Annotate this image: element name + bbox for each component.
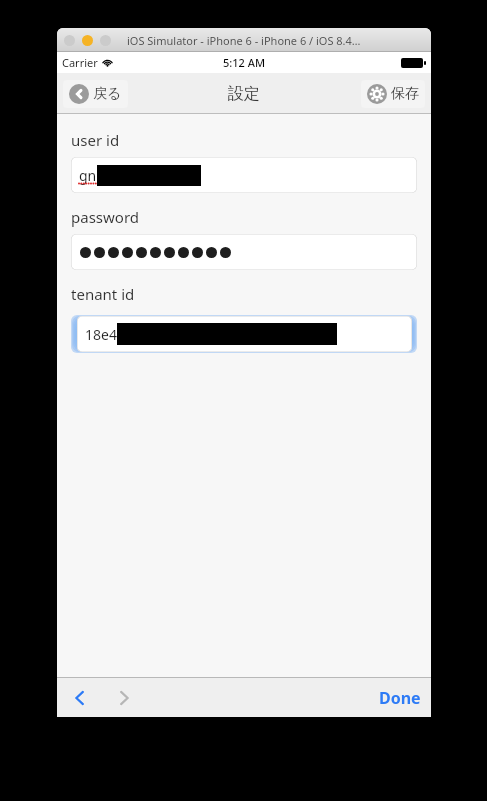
button[interactable]: 保存 [361,80,425,108]
staticText: tenant id [71,284,135,304]
button[interactable]: gn [71,157,417,193]
staticText: 5:12 AM [223,55,266,70]
staticText: 保存 [391,85,419,103]
staticText: 戻る [93,85,122,103]
button[interactable]: Next field [107,681,141,715]
staticText: user id [71,130,120,150]
button[interactable]: 18e4 [77,316,412,352]
staticText: password [71,207,139,227]
staticText: 設定 [228,84,260,104]
staticText: gn [79,166,97,185]
staticText: Carrier [62,55,98,70]
staticText: iOS Simulator - iPhone 6 - iPhone 6 / iO… [127,33,361,48]
button[interactable]: 戻る [63,80,128,108]
button[interactable] [71,234,417,270]
button[interactable]: Previous field [63,681,97,715]
staticText: Done [379,687,421,709]
staticText: 18e4 [85,325,117,344]
button[interactable]: Done [369,680,431,716]
